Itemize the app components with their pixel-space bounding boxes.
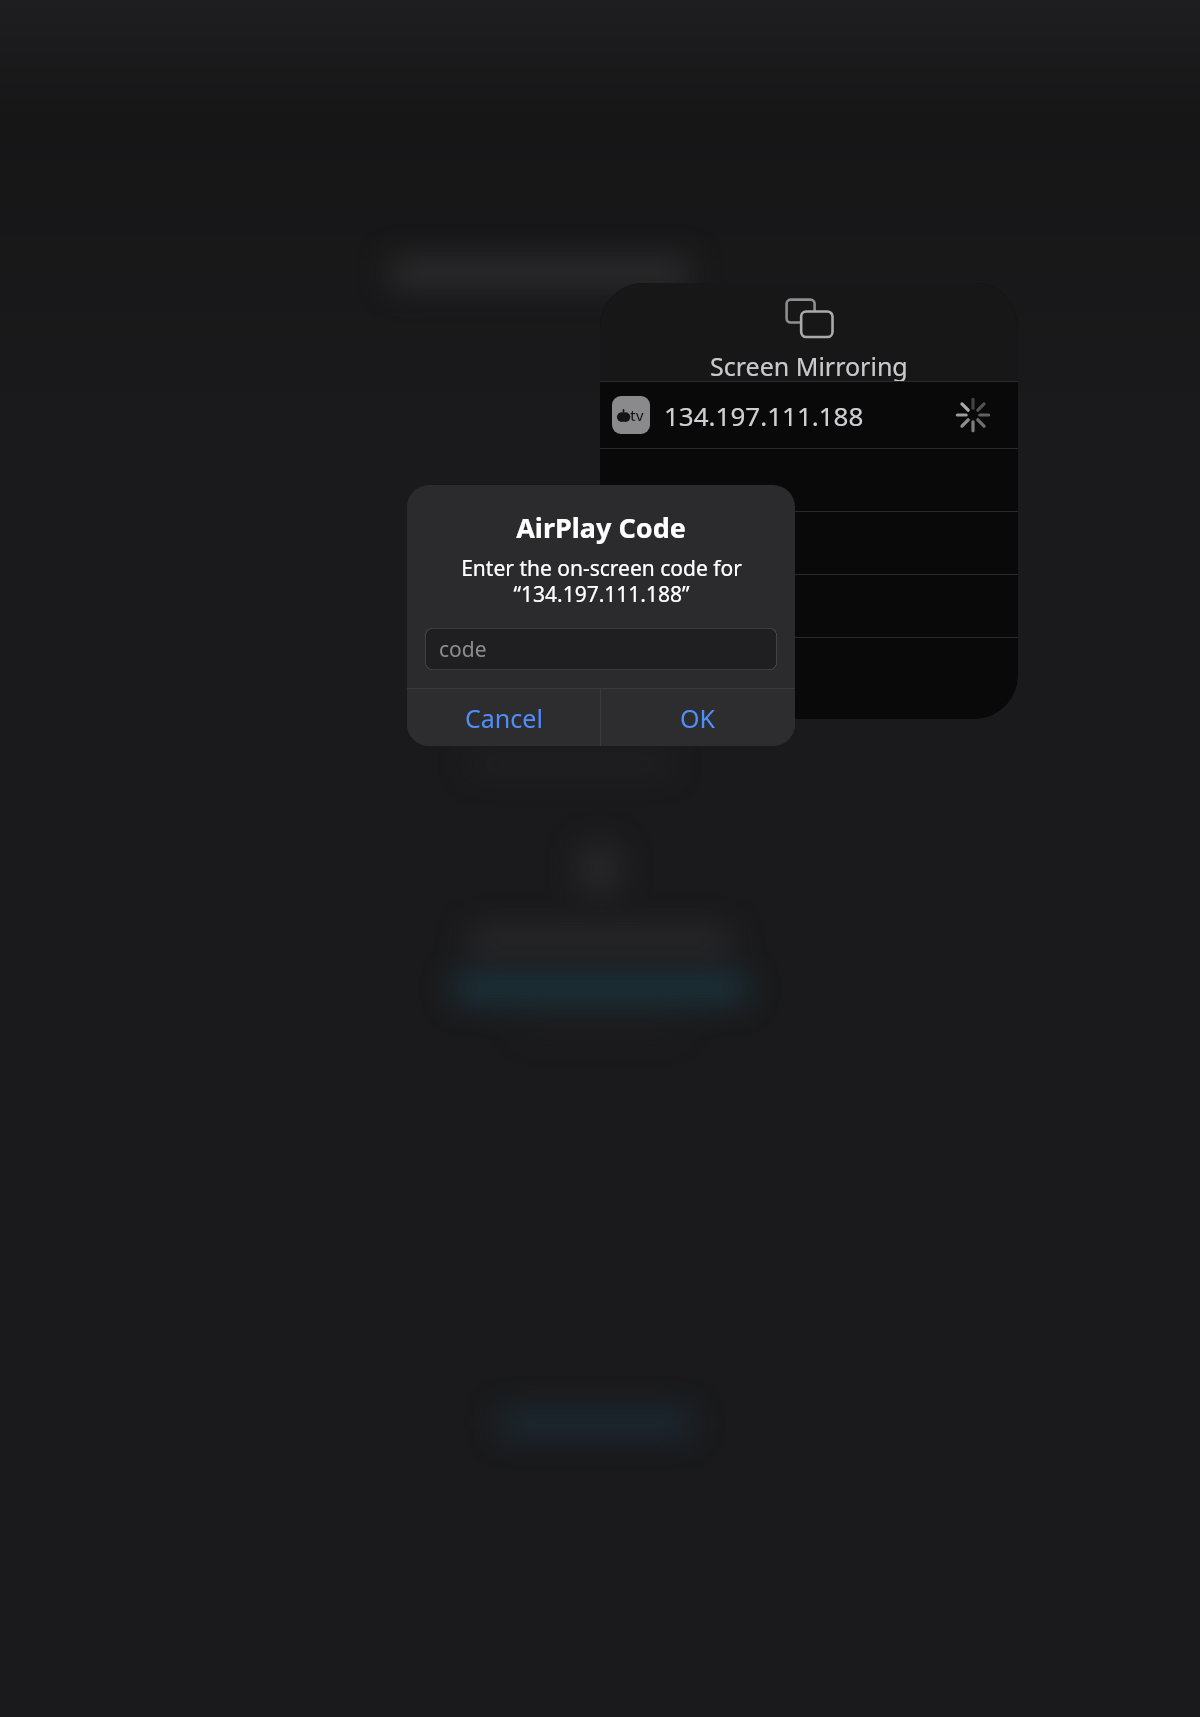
staticText: Cancel	[465, 701, 543, 735]
button[interactable]: tv	[600, 382, 1018, 448]
staticText: OK	[680, 701, 716, 735]
button[interactable]	[600, 575, 1018, 637]
staticText: 134.197.111.188	[664, 398, 864, 433]
staticText: tv	[630, 405, 644, 425]
button[interactable]: Cancel	[407, 689, 600, 746]
button[interactable]	[600, 449, 1018, 511]
button[interactable]	[600, 638, 1018, 719]
button[interactable]	[600, 512, 1018, 574]
button[interactable]: OK	[601, 689, 795, 746]
staticText: code	[439, 635, 487, 664]
button[interactable]: code	[425, 628, 777, 670]
staticText: AirPlay Code	[516, 509, 686, 546]
staticText: Screen Mirroring	[710, 349, 908, 381]
other: Connecting	[956, 398, 990, 432]
staticText: Enter the on-screen code for “134.197.11…	[461, 554, 742, 608]
